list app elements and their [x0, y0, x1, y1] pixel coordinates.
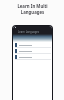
- button[interactable]: [13, 42, 52, 48]
- staticText: Learn Languages: [18, 30, 39, 34]
- button[interactable]: [13, 48, 52, 54]
- staticText: Learn In Multi Languages: [17, 3, 48, 15]
- button[interactable]: [13, 54, 52, 60]
